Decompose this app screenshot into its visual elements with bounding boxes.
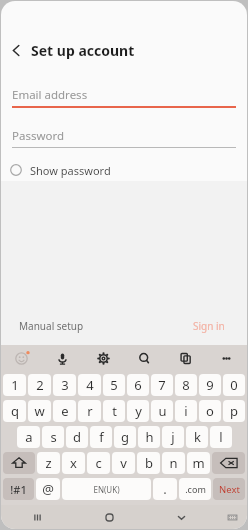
button[interactable]: t — [103, 400, 125, 422]
button[interactable]: p — [223, 400, 245, 422]
button[interactable]: 1 — [3, 374, 26, 396]
button[interactable]: Emoji — [1, 345, 42, 372]
button[interactable]: h — [138, 426, 160, 448]
button[interactable]: m — [187, 452, 210, 474]
button[interactable]: Voice input — [42, 345, 83, 372]
button[interactable]: 2 — [28, 374, 51, 396]
staticText: 5 — [110, 376, 118, 394]
button[interactable]: Sign in — [189, 315, 229, 337]
button[interactable]: w — [28, 400, 51, 422]
staticText: Set up account — [31, 41, 135, 60]
button[interactable]: Home — [73, 505, 145, 529]
button[interactable]: a — [17, 426, 40, 448]
staticText: d — [73, 428, 81, 446]
button[interactable]: Settings — [83, 345, 124, 372]
button[interactable]: Manual setup — [15, 315, 88, 337]
button[interactable]: @ — [36, 478, 60, 500]
staticText: w — [34, 402, 45, 420]
button[interactable]: y — [127, 400, 149, 422]
button[interactable]: Backspace — [212, 452, 245, 474]
button[interactable]: More options — [206, 345, 247, 372]
button[interactable]: d — [66, 426, 88, 448]
button[interactable]: Search — [124, 345, 165, 372]
button[interactable]: q — [3, 400, 26, 422]
staticText: m — [192, 454, 205, 472]
staticText: @ — [42, 480, 54, 498]
staticText: u — [158, 402, 167, 420]
staticText: n — [169, 454, 178, 472]
button[interactable]: f — [90, 426, 112, 448]
button[interactable]: 9 — [199, 374, 221, 396]
button[interactable]: Shift — [3, 452, 35, 474]
button[interactable]: Recents — [1, 505, 73, 529]
button[interactable]: g — [114, 426, 136, 448]
button[interactable]: EN(UK) — [62, 478, 151, 500]
button[interactable]: e — [53, 400, 76, 422]
staticText: f — [99, 428, 104, 446]
button[interactable]: . — [153, 478, 177, 500]
staticText: 0 — [230, 376, 238, 394]
button[interactable]: 8 — [175, 374, 197, 396]
staticText: 1 — [11, 376, 19, 394]
button[interactable]: .com — [179, 478, 211, 500]
staticText: z — [45, 454, 52, 472]
staticText: h — [145, 428, 154, 446]
staticText: l — [219, 428, 223, 446]
staticText: . — [163, 480, 167, 498]
button[interactable]: o — [199, 400, 221, 422]
button[interactable]: i — [175, 400, 197, 422]
button[interactable]: !#1 — [3, 478, 34, 500]
button[interactable]: Back — [1, 35, 31, 65]
staticText: r — [87, 402, 93, 420]
button[interactable]: z — [37, 452, 60, 474]
button[interactable]: l — [210, 426, 232, 448]
button[interactable]: 4 — [78, 374, 101, 396]
button[interactable]: n — [162, 452, 185, 474]
button[interactable]: 7 — [151, 374, 173, 396]
button[interactable]: b — [137, 452, 160, 474]
button[interactable]: Keyboard layout — [217, 505, 247, 529]
button[interactable]: Next — [213, 478, 245, 500]
staticText: x — [70, 454, 77, 472]
button[interactable]: Translate — [165, 345, 206, 372]
staticText: 6 — [134, 376, 142, 394]
staticText: EN(UK) — [93, 484, 120, 495]
staticText: q — [11, 402, 19, 420]
button[interactable]: 6 — [127, 374, 149, 396]
staticText: Show password — [30, 163, 111, 178]
staticText: 2 — [36, 376, 44, 394]
staticText: p — [230, 402, 238, 420]
staticText: g — [121, 428, 129, 446]
button[interactable]: Show password — [10, 159, 111, 181]
staticText: 7 — [158, 376, 166, 394]
button[interactable]: j — [162, 426, 184, 448]
button[interactable]: 3 — [53, 374, 76, 396]
staticText: Sign in — [193, 319, 225, 333]
staticText: Email address — [12, 87, 88, 103]
button[interactable]: u — [151, 400, 173, 422]
button[interactable]: 5 — [103, 374, 125, 396]
staticText: y — [135, 402, 142, 420]
staticText: c — [95, 454, 102, 472]
button[interactable]: v — [112, 452, 135, 474]
staticText: Manual setup — [19, 319, 84, 333]
button[interactable]: Hide keyboard — [145, 505, 217, 529]
staticText: i — [184, 402, 188, 420]
staticText: 8 — [182, 376, 190, 394]
staticText: s — [50, 428, 57, 446]
button[interactable]: r — [78, 400, 101, 422]
staticText: 9 — [206, 376, 214, 394]
button[interactable]: s — [42, 426, 64, 448]
staticText: k — [194, 428, 201, 446]
button[interactable]: x — [62, 452, 85, 474]
staticText: .com — [185, 483, 206, 495]
staticText: o — [206, 402, 214, 420]
staticText: b — [145, 454, 153, 472]
staticText: Password — [12, 128, 65, 144]
staticText: t — [112, 402, 117, 420]
button[interactable]: 0 — [223, 374, 245, 396]
button[interactable]: c — [87, 452, 110, 474]
button[interactable]: k — [186, 426, 208, 448]
staticText: v — [120, 454, 127, 472]
staticText: 3 — [61, 376, 69, 394]
